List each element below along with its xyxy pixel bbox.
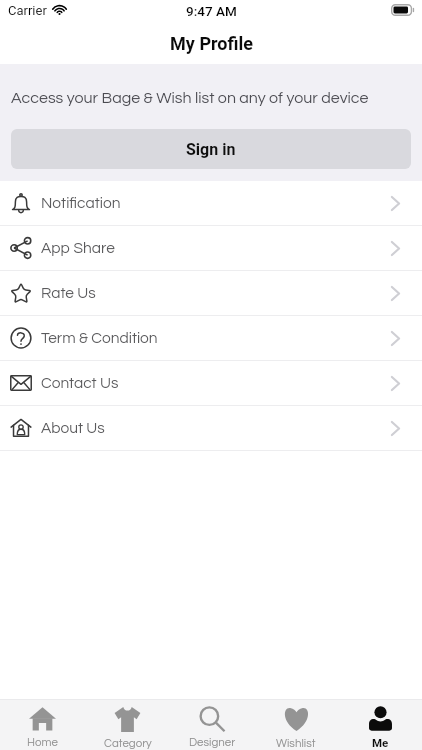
staticText: Access your Bage & Wish list on any of y… [11,90,369,106]
button[interactable]: Home [0,700,85,750]
button[interactable]: Term & Condition [0,316,422,361]
staticText: Me [372,736,389,749]
staticText: App Share [41,240,115,256]
button[interactable]: Contact Us [0,361,422,406]
button[interactable]: App Share [0,226,422,271]
staticText: My Profile [170,33,253,54]
staticText: Carrier [8,3,47,18]
staticText: Category [104,738,152,750]
button[interactable]: Sign in [11,129,411,169]
button[interactable]: Designer [170,700,254,750]
button[interactable]: Rate Us [0,271,422,316]
button[interactable]: Category [85,700,170,750]
staticText: Rate Us [41,285,96,301]
staticText: About Us [41,420,105,436]
staticText: Designer [189,737,236,749]
button[interactable]: Me [338,700,422,750]
button[interactable]: About Us [0,406,422,451]
staticText: Notification [41,195,121,211]
button[interactable]: Notification [0,181,422,226]
staticText: Term & Condition [41,330,158,346]
staticText: Wishlist [276,738,316,750]
staticText: 9:47 AM [186,3,237,19]
staticText: Home [27,737,58,749]
staticText: Sign in [186,140,236,159]
button[interactable]: Wishlist [254,700,338,750]
staticText: Contact Us [41,375,119,391]
